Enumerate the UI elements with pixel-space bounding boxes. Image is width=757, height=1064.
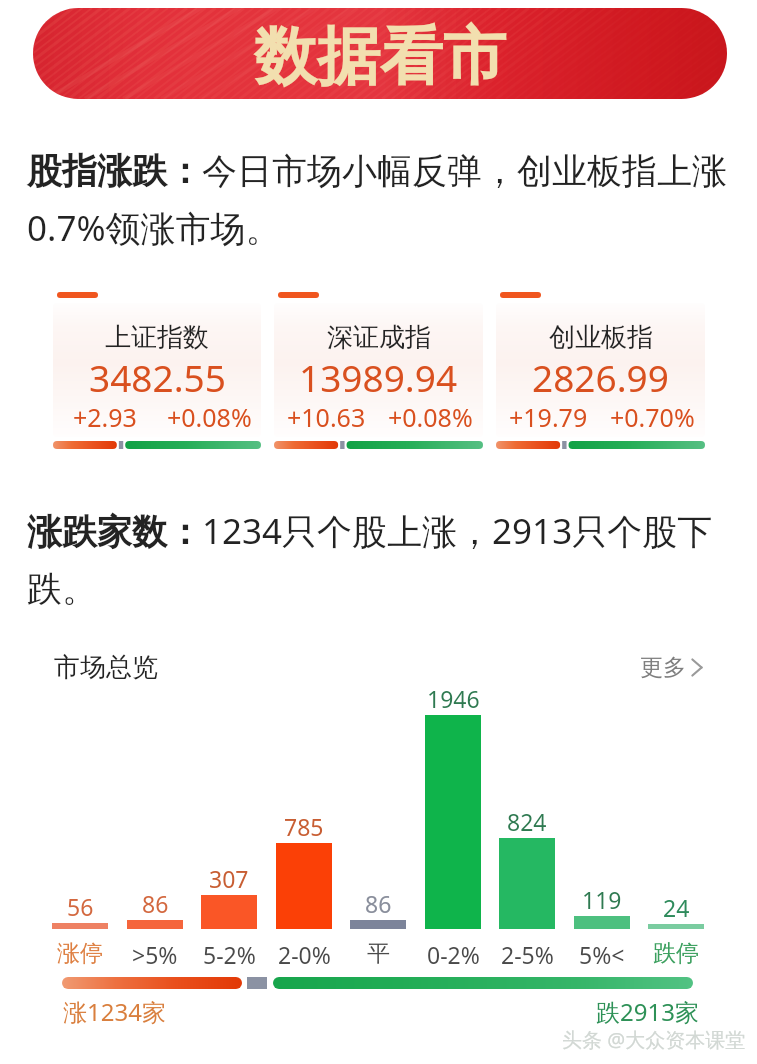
staticText: 824 — [507, 806, 547, 837]
staticText: +10.63 — [287, 400, 366, 434]
staticText: 307 — [209, 863, 249, 894]
staticText: 0-2% — [427, 939, 480, 970]
button[interactable]: 0-2% 1946 — [425, 679, 481, 965]
staticText: +0.70% — [610, 400, 695, 434]
button[interactable]: 数据看市 — [33, 8, 727, 99]
staticText: +19.79 — [509, 400, 588, 434]
button[interactable]: 更多 More — [640, 653, 703, 682]
staticText: 创业板指 — [549, 321, 653, 354]
staticText: 市场总览 — [54, 651, 158, 684]
staticText: 2826.99 — [532, 352, 669, 402]
staticText: 涨停 — [57, 939, 103, 968]
staticText: 涨跌家数：1234只个股上涨，2913只个股下跌。 — [27, 507, 739, 611]
staticText: +0.08% — [388, 400, 473, 434]
staticText: 数据看市 — [254, 17, 506, 96]
button[interactable]: 创业板指 — [496, 291, 705, 449]
staticText: 2-5% — [501, 939, 554, 970]
staticText: 5%< — [579, 939, 625, 970]
staticText: 86 — [142, 888, 169, 919]
staticText: 13989.94 — [299, 352, 458, 402]
staticText: 5-2% — [203, 939, 256, 970]
staticText: 56 — [67, 891, 94, 922]
button[interactable]: 平 86 — [350, 884, 406, 965]
button[interactable]: 2-5% 824 — [499, 802, 555, 965]
staticText: 更多 — [640, 653, 686, 682]
button[interactable]: 涨停 56 — [52, 887, 108, 965]
staticText: 1946 — [427, 683, 480, 714]
staticText: 24 — [663, 892, 690, 923]
staticText: 119 — [582, 884, 622, 915]
button[interactable]: >5% 86 — [127, 884, 183, 965]
staticText: +2.93 — [73, 400, 137, 434]
staticText: 跌停 — [653, 939, 699, 968]
staticText: >5% — [132, 939, 178, 970]
button[interactable]: 2-0% 785 — [276, 807, 332, 965]
staticText: +0.08% — [167, 400, 252, 434]
button[interactable]: 跌停 24 — [648, 888, 704, 965]
staticText: 平 — [367, 939, 390, 968]
staticText: 跌2913家 — [596, 995, 699, 1028]
staticText: 3482.55 — [89, 352, 226, 402]
staticText: 涨1234家 — [63, 995, 166, 1028]
staticText: 785 — [284, 811, 324, 842]
staticText: 上证指数 — [105, 321, 209, 354]
button[interactable]: 上证指数 — [53, 291, 261, 449]
staticText: 股指涨跌：今日市场小幅反弹，创业板指上涨0.7%领涨市场。 — [27, 149, 751, 251]
button[interactable]: 5-2% 307 — [201, 859, 257, 965]
staticText: 深证成指 — [327, 321, 431, 354]
button[interactable]: 深证成指 — [274, 291, 483, 449]
staticText: 86 — [365, 888, 392, 919]
staticText: 2-0% — [278, 939, 331, 970]
button[interactable]: 5%< 119 — [574, 880, 630, 965]
staticText: 头条 @大众资本课堂 — [562, 1026, 746, 1053]
